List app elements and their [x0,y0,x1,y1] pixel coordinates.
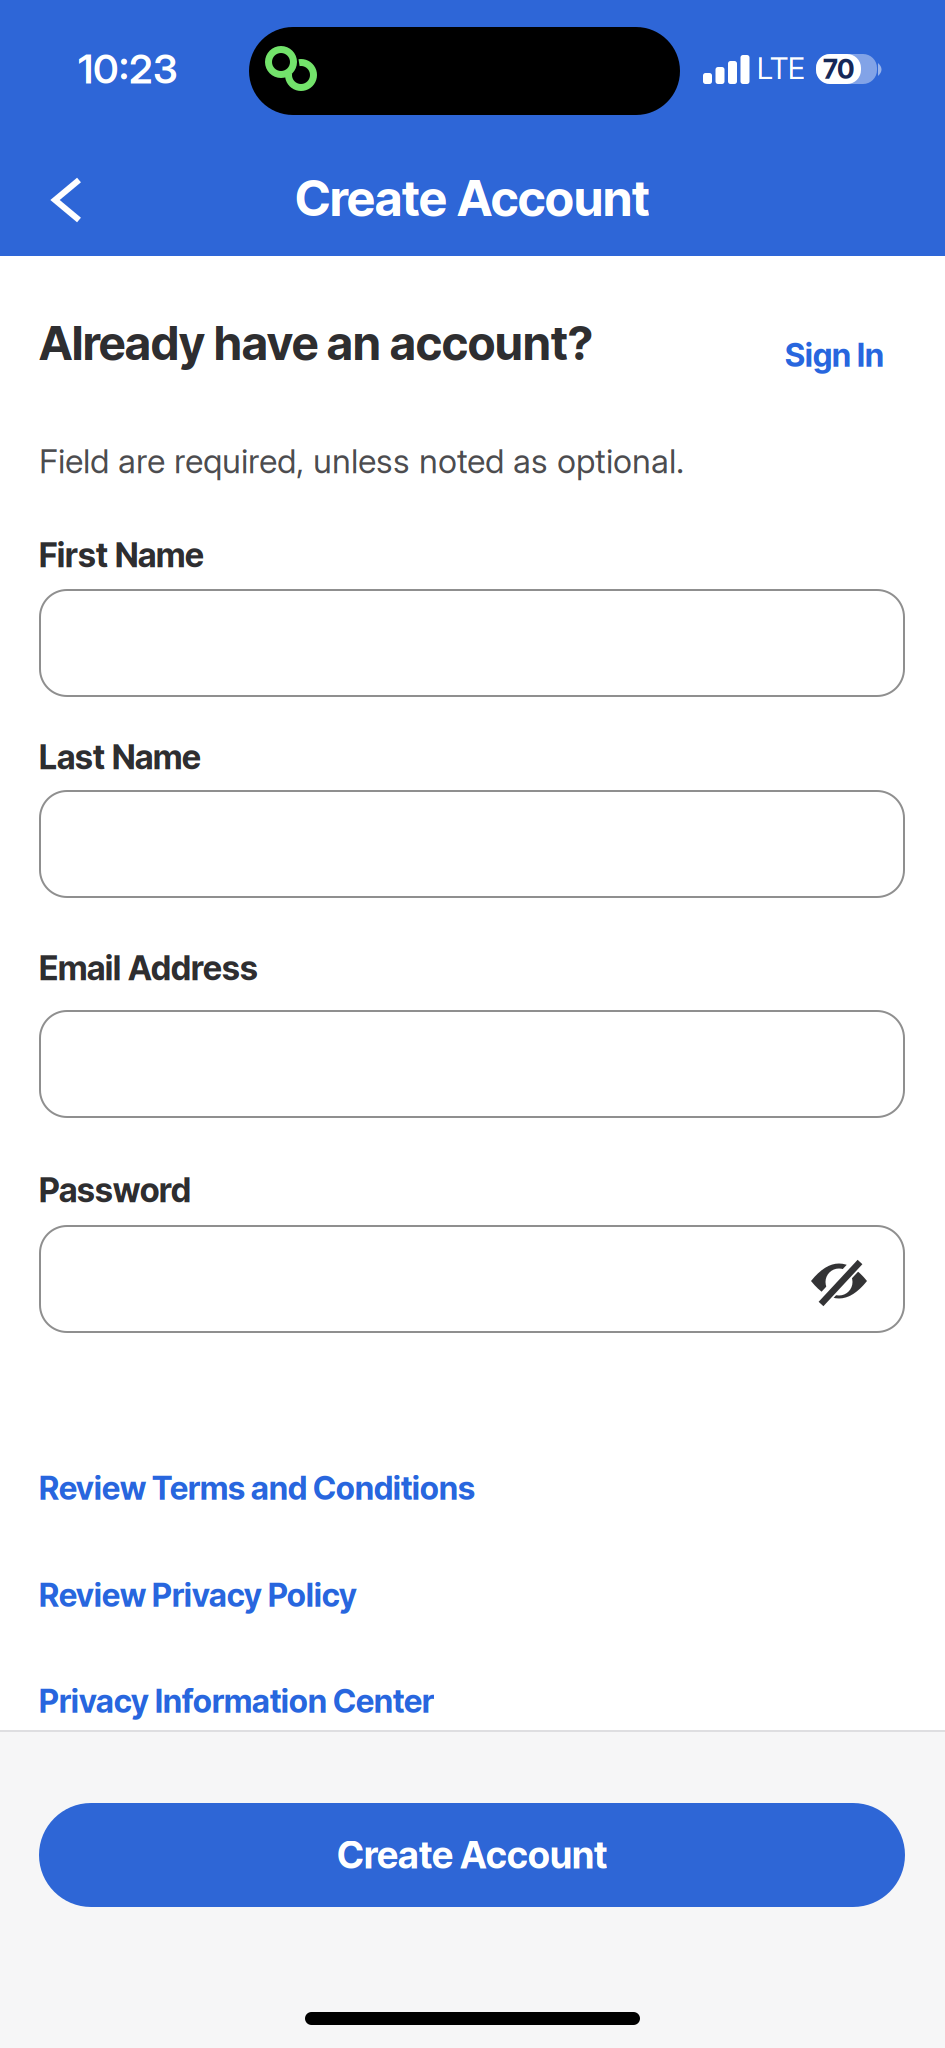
staticText: Review Terms and Conditions [39,1469,475,1507]
button[interactable]: Review Privacy Policy [39,1573,357,1617]
button[interactable]: Back [50,177,84,223]
staticText: Last Name [39,737,201,777]
staticText: Sign In [785,336,884,374]
staticText: Create Account [337,1832,607,1878]
button[interactable]: Create Account [39,1803,905,1907]
staticText: LTE [757,49,805,86]
staticText: First Name [39,535,204,575]
staticText: Email Address [39,948,258,988]
staticText: Review Privacy Policy [39,1576,357,1614]
staticText: Field are required, unless noted as opti… [39,441,684,481]
staticText: Password [39,1170,191,1210]
staticText: 70 [823,53,854,85]
button[interactable]: Show password [809,1258,869,1306]
staticText: Create Account [295,168,650,228]
button[interactable]: Privacy Information Center [39,1679,434,1723]
staticText: Already have an account? [39,315,593,371]
staticText: Privacy Information Center [39,1682,434,1720]
staticText: 10:23 [78,45,178,93]
button[interactable]: Sign In [785,333,884,377]
button[interactable]: Review Terms and Conditions [39,1466,475,1510]
